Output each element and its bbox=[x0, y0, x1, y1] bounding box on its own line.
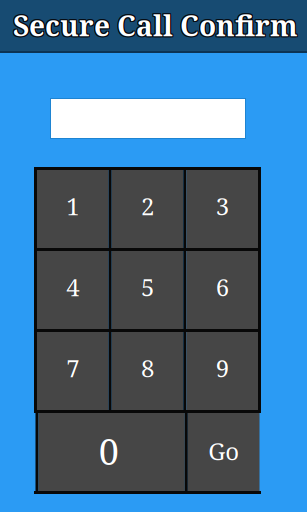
button[interactable]: 7 bbox=[37, 332, 109, 410]
staticText: 0 bbox=[99, 426, 119, 475]
staticText: Secure Call Confirm bbox=[14, 5, 299, 43]
staticText: Secure Call Confirm bbox=[14, 7, 299, 45]
staticText: Secure Call Confirm bbox=[13, 6, 298, 44]
button[interactable]: 5 bbox=[112, 251, 183, 329]
staticText: 4 bbox=[66, 271, 79, 303]
button[interactable]: 4 bbox=[37, 251, 109, 329]
button[interactable]: 3 bbox=[186, 170, 258, 248]
staticText: 7 bbox=[66, 352, 79, 384]
staticText: 9 bbox=[216, 352, 229, 384]
button[interactable]: 1 bbox=[37, 170, 109, 248]
button[interactable]: 8 bbox=[112, 332, 183, 410]
button[interactable]: 6 bbox=[186, 251, 258, 329]
staticText: Secure Call Confirm bbox=[12, 6, 297, 44]
staticText: Secure Call Confirm bbox=[13, 5, 298, 43]
staticText: 5 bbox=[141, 271, 154, 303]
staticText: 8 bbox=[141, 352, 154, 384]
staticText: 3 bbox=[216, 190, 229, 222]
staticText: Go bbox=[208, 435, 239, 467]
button[interactable]: 0 bbox=[38, 413, 185, 491]
staticText: Secure Call Confirm bbox=[12, 7, 297, 45]
staticText: 6 bbox=[216, 271, 229, 303]
staticText: 2 bbox=[141, 190, 154, 222]
button[interactable]: Confirmation code field bbox=[50, 98, 246, 139]
staticText: Secure Call Confirm bbox=[12, 5, 297, 43]
button[interactable]: 2 bbox=[112, 170, 183, 248]
staticText: Secure Call Confirm bbox=[14, 6, 299, 44]
button[interactable]: Go bbox=[188, 413, 259, 491]
button[interactable]: 9 bbox=[186, 332, 258, 410]
staticText: Secure Call Confirm bbox=[13, 7, 298, 45]
staticText: 1 bbox=[66, 190, 79, 222]
